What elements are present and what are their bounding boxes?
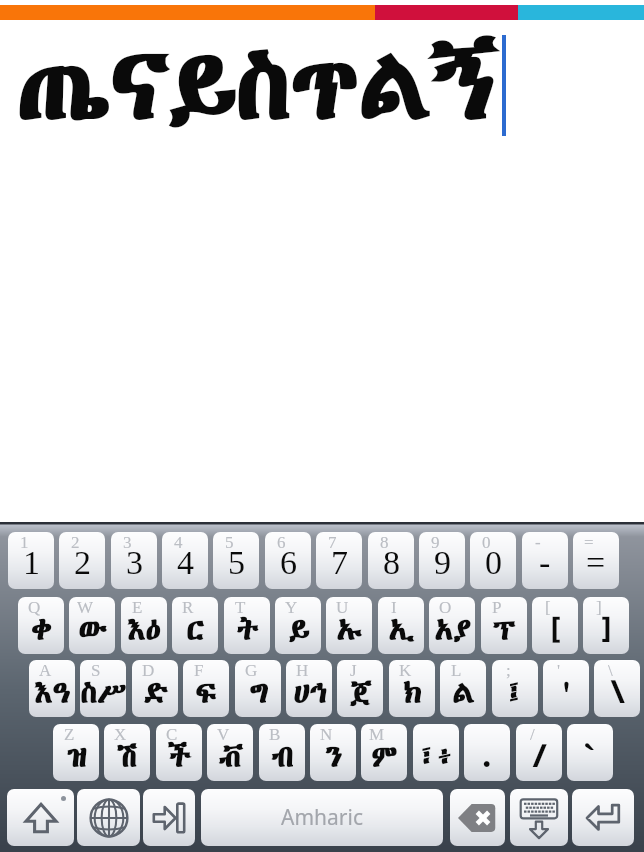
button[interactable]: E [121,597,167,654]
staticText: እዕ [127,610,161,650]
staticText: [ [545,598,551,617]
button[interactable]: ' [543,660,589,717]
button[interactable]: 7 [316,532,362,589]
staticText: ' [563,673,569,713]
staticText: ፤ [506,673,524,713]
button[interactable]: ` [567,724,613,781]
button[interactable]: R [172,597,218,654]
button[interactable]: T [224,597,270,654]
button[interactable]: J [337,660,383,717]
staticText: 5 [228,544,245,582]
staticText: 7 [328,533,337,552]
staticText: ይ [288,610,309,650]
staticText: ' [557,661,561,680]
button[interactable]: 8 [368,532,414,589]
button[interactable]: G [235,660,281,717]
button[interactable]: M [361,724,407,781]
button[interactable]: . [464,724,510,781]
staticText: L [451,661,462,680]
staticText: 2 [74,544,91,582]
staticText: Y [285,598,298,617]
button[interactable]: I [378,597,424,654]
button[interactable]: O [429,597,475,654]
button[interactable]: 4 [162,532,208,589]
button[interactable]: - [522,532,568,589]
button[interactable]: Enter [572,789,634,846]
staticText: = [584,533,594,552]
button[interactable]: Y [275,597,321,654]
staticText: ጀ [349,673,371,713]
button[interactable]: ] [583,597,629,654]
staticText: ጤናይስጥልኝ [15,22,494,153]
button[interactable]: P [481,597,527,654]
button[interactable]: C [156,724,202,781]
button[interactable]: Tab [143,789,195,846]
staticText: . [482,737,492,777]
button[interactable]: F [183,660,229,717]
button[interactable]: Hide keyboard [510,789,568,846]
button[interactable]: \ [594,660,640,717]
staticText: 6 [277,533,286,552]
staticText: 1 [23,544,40,582]
staticText: N [320,725,333,744]
staticText: = [586,544,606,582]
staticText: - [535,533,541,552]
button[interactable]: D [132,660,178,717]
staticText: H [296,661,309,680]
staticText: ት [236,610,258,650]
button[interactable]: Z [53,724,99,781]
button[interactable]: N [310,724,356,781]
staticText: C [166,725,178,744]
button[interactable]: 2 [59,532,105,589]
staticText: 8 [383,544,400,582]
button[interactable]: 9 [419,532,465,589]
button[interactable]: U [326,597,372,654]
staticText: I [391,598,397,617]
button[interactable]: 0 [470,532,516,589]
staticText: ] [601,610,611,650]
button[interactable]: K [389,660,435,717]
button[interactable]: V [207,724,253,781]
staticText: 3 [123,533,132,552]
button[interactable]: H [286,660,332,717]
staticText: T [235,598,246,617]
staticText: አያ [434,610,470,650]
button[interactable]: 5 [213,532,259,589]
button[interactable]: B [259,724,305,781]
button[interactable]: S [80,660,126,717]
staticText: ] [596,598,602,617]
button[interactable]: Shift [7,789,74,846]
staticText: ` [585,737,596,777]
staticText: G [245,661,258,680]
button[interactable]: 1 [8,532,54,589]
staticText: 1 [20,533,29,552]
staticText: ክ [403,673,422,713]
staticText: ዝ [67,737,86,777]
button[interactable]: X [104,724,150,781]
button[interactable]: / [516,724,562,781]
button[interactable]: ; [492,660,538,717]
button[interactable]: Q [18,597,64,654]
staticText: M [369,725,385,744]
button[interactable]: L [440,660,486,717]
button[interactable]: 3 [111,532,157,589]
button[interactable]: Backspace [450,789,505,846]
button[interactable]: 6 [265,532,311,589]
staticText: ኢ [388,610,414,650]
button[interactable]: Amharic [201,789,443,846]
staticText: U [336,598,349,617]
staticText: K [399,661,412,680]
button[interactable]: W [69,597,115,654]
button[interactable]: = [573,532,619,589]
staticText: - [539,544,551,582]
staticText: ር [186,610,204,650]
staticText: 9 [434,544,451,582]
staticText: [ [550,610,560,650]
staticText: ቀ [31,610,51,650]
staticText: ፍ [195,673,217,713]
button[interactable]: Change language [77,789,140,846]
staticText: ል [452,673,475,713]
button[interactable]: [ [532,597,578,654]
button[interactable]: ፣፥ [413,724,459,781]
button[interactable]: A [29,660,75,717]
